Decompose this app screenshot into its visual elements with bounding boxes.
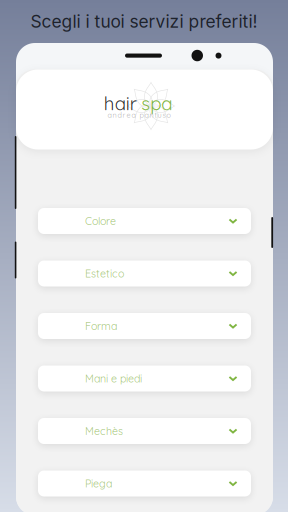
button[interactable]: Estetico: [38, 260, 251, 286]
staticText: Mechès: [85, 424, 123, 438]
staticText: spa: [141, 91, 172, 115]
button[interactable]: Colore: [38, 208, 251, 234]
staticText: Scegli i tuoi servizi preferiti!: [30, 11, 257, 32]
button[interactable]: Mechès: [38, 418, 251, 444]
staticText: hair: [104, 91, 137, 115]
staticText: Mani e piedi: [85, 372, 142, 385]
staticText: Estetico: [85, 267, 124, 280]
staticText: andrea pantuso: [107, 110, 170, 120]
button[interactable]: Mani e piedi: [38, 365, 251, 391]
staticText: Forma: [85, 319, 117, 333]
staticText: Colore: [85, 214, 116, 228]
button[interactable]: Forma: [38, 313, 251, 339]
button[interactable]: Piega: [38, 470, 251, 496]
staticText: Piega: [85, 477, 112, 490]
